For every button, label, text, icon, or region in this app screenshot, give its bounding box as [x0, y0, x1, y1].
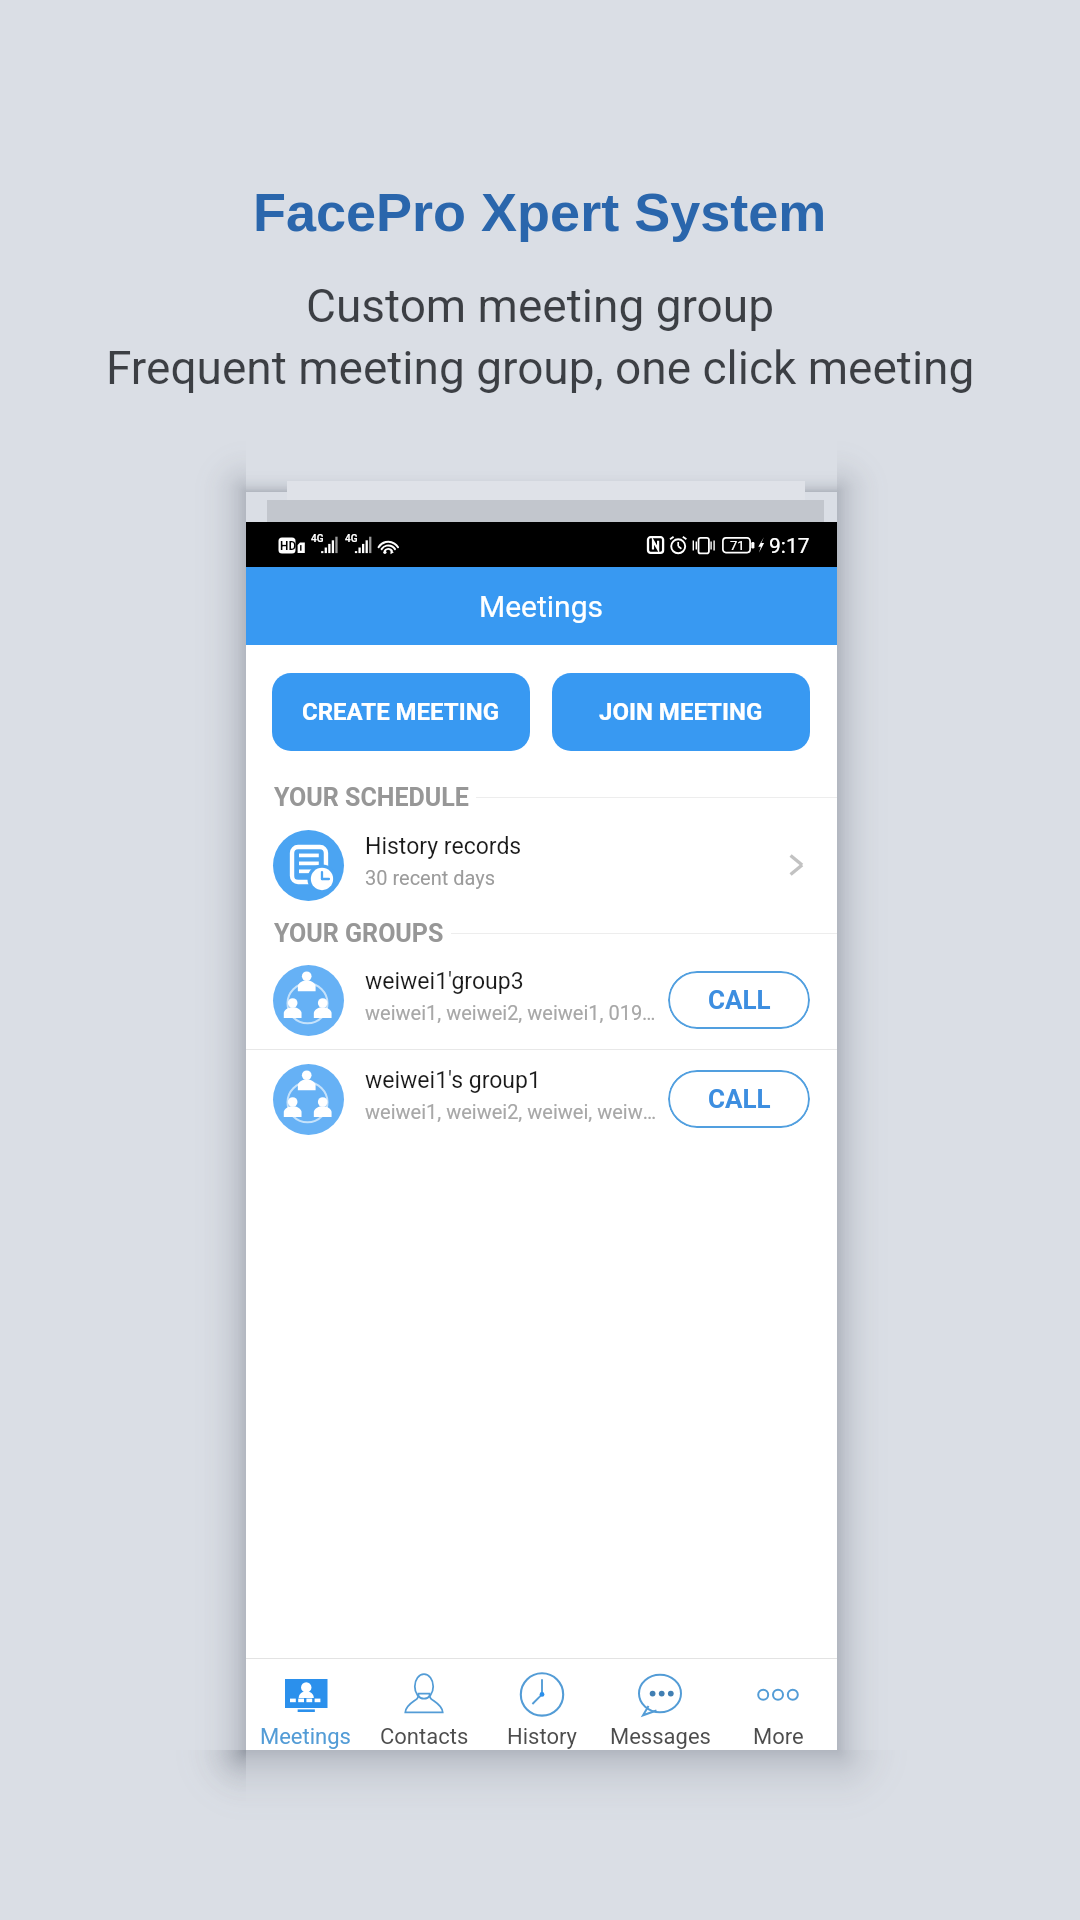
staticText: Contacts: [380, 1724, 469, 1750]
staticText: HD: [280, 539, 297, 553]
button[interactable]: History tab: [483, 1659, 601, 1750]
staticText: CALL: [708, 1084, 771, 1114]
button[interactable]: History records: [246, 818, 837, 912]
button[interactable]: Contacts tab: [365, 1659, 483, 1750]
staticText: JOIN MEETING: [599, 698, 763, 726]
staticText: More: [753, 1724, 804, 1750]
staticText: History records: [365, 833, 522, 860]
staticText: YOUR GROUPS: [274, 919, 444, 948]
staticText: weiwei1's group1: [365, 1067, 541, 1094]
staticText: History: [507, 1724, 577, 1750]
staticText: weiwei1'group3: [365, 968, 524, 995]
button[interactable]: Meetings tab: [246, 1659, 365, 1750]
button[interactable]: weiwei1's group1: [246, 1050, 837, 1148]
staticText: 71: [730, 538, 745, 553]
staticText: Meetings: [260, 1724, 351, 1750]
staticText: Custom meeting group: [306, 279, 775, 333]
button[interactable]: More tab: [719, 1659, 837, 1750]
button[interactable]: CREATE MEETING: [272, 673, 530, 751]
button[interactable]: Messages tab: [601, 1659, 719, 1750]
staticText: 9:17: [769, 534, 810, 559]
staticText: FacePro Xpert System: [253, 182, 827, 242]
staticText: weiwei1, weiwei2, weiwei, weiwei…: [365, 1100, 665, 1123]
staticText: CREATE MEETING: [302, 698, 500, 726]
staticText: Messages: [610, 1724, 711, 1750]
staticText: 30 recent days: [365, 866, 496, 889]
button[interactable]: CALL: [668, 1070, 810, 1128]
staticText: Meetings: [479, 589, 604, 624]
button[interactable]: CALL: [668, 971, 810, 1029]
staticText: CALL: [708, 985, 771, 1015]
button[interactable]: JOIN MEETING: [552, 673, 810, 751]
button[interactable]: weiwei1'group3: [246, 951, 837, 1049]
staticText: Frequent meeting group, one click meetin…: [106, 341, 975, 395]
staticText: YOUR SCHEDULE: [274, 783, 469, 812]
staticText: 4G: [311, 533, 324, 545]
staticText: weiwei1, weiwei2, weiwei1, 0195…: [365, 1001, 665, 1024]
staticText: 4G: [345, 533, 358, 545]
